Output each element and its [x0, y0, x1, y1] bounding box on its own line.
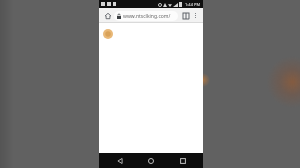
button[interactable]: More options: [191, 11, 200, 20]
button[interactable]: www.ntsclking.com/: [114, 11, 178, 21]
staticText: 1:44 PM: [185, 2, 201, 7]
button[interactable]: Home: [102, 10, 113, 21]
button[interactable]: Back: [109, 153, 131, 168]
staticText: www.ntsclking.com/: [123, 13, 171, 20]
button[interactable]: Recent apps: [172, 153, 194, 168]
button[interactable]: Switch tabs: [180, 10, 191, 21]
button[interactable]: Home: [140, 153, 162, 168]
